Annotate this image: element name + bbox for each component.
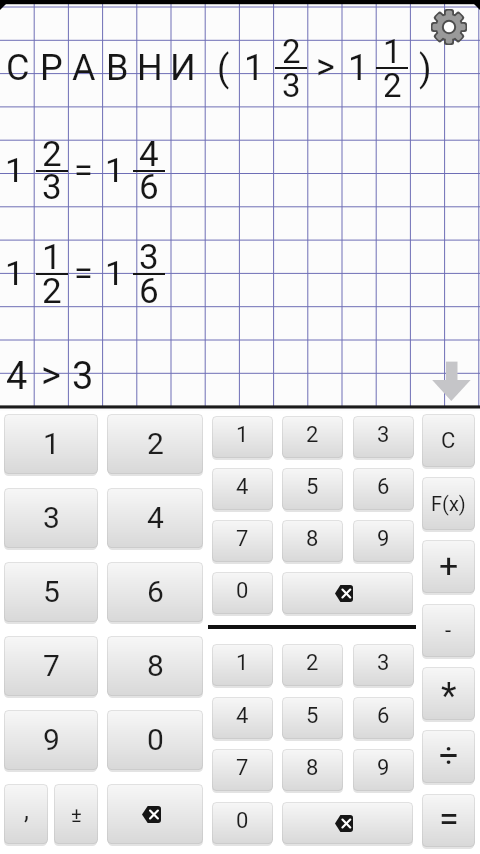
button[interactable]: 1 [212, 416, 273, 458]
button[interactable]: 0 [212, 572, 273, 614]
button[interactable] [282, 572, 413, 614]
button[interactable]: 8 [107, 636, 203, 696]
staticText: * [441, 675, 457, 717]
staticText: 2 [147, 426, 164, 461]
staticText: 9 [377, 755, 390, 781]
staticText: 3 [72, 354, 94, 399]
staticText: - [445, 618, 452, 644]
button[interactable]: 7 [212, 749, 273, 791]
button[interactable]: - [422, 604, 475, 657]
staticText: ÷ [439, 735, 459, 775]
staticText: 2 [306, 650, 319, 676]
button[interactable]: 3 [353, 644, 414, 686]
staticText: 1 [5, 253, 25, 293]
staticText: 2 [42, 271, 62, 312]
staticText: 5 [43, 574, 60, 609]
staticText: А [72, 47, 96, 89]
staticText: 5 [306, 474, 319, 500]
staticText: 9 [43, 722, 60, 757]
staticText: 7 [236, 755, 249, 781]
staticText: 1 [236, 422, 249, 448]
button[interactable]: 8 [282, 749, 343, 791]
staticText: 2 [42, 134, 62, 175]
staticText: 2 [306, 422, 319, 448]
staticText: + [439, 545, 459, 585]
staticText: В [106, 47, 129, 89]
staticText: 3 [43, 500, 60, 535]
button[interactable]: ± [54, 784, 98, 844]
staticText: 0 [147, 722, 164, 757]
button[interactable]: 9 [4, 710, 98, 770]
button[interactable]: 6 [353, 697, 414, 739]
staticText: 6 [377, 474, 390, 500]
button[interactable]: F(x) [422, 477, 475, 530]
button[interactable]: ÷ [422, 730, 475, 783]
button[interactable]: 6 [353, 468, 414, 510]
button[interactable]: 3 [353, 416, 414, 458]
button[interactable]: 5 [282, 468, 343, 510]
button[interactable]: 0 [107, 710, 203, 770]
button[interactable]: C [422, 414, 475, 467]
staticText: 0 [236, 578, 249, 604]
staticText: 1 [42, 237, 62, 278]
staticText: С [6, 47, 30, 89]
button[interactable]: 2 [282, 644, 343, 686]
button[interactable]: + [422, 540, 475, 593]
staticText: 3 [139, 237, 159, 278]
staticText: 4 [236, 474, 249, 500]
staticText: 4 [139, 134, 159, 175]
staticText: 2 [383, 66, 402, 105]
button[interactable]: 6 [107, 562, 203, 622]
staticText: 6 [377, 703, 390, 729]
staticText: 1 [105, 253, 125, 293]
button[interactable]: 5 [282, 697, 343, 739]
staticText: 7 [236, 526, 249, 552]
button[interactable]: 4 [107, 488, 203, 548]
button[interactable]: 1 [4, 414, 98, 474]
button[interactable]: = [422, 794, 475, 847]
staticText: ± [71, 803, 82, 826]
button[interactable]: 9 [353, 520, 414, 562]
button[interactable]: 7 [212, 520, 273, 562]
staticText: 9 [377, 526, 390, 552]
staticText: 3 [42, 167, 62, 208]
staticText: 1 [383, 32, 402, 71]
staticText: 3 [377, 650, 390, 676]
staticText: ) [419, 48, 432, 90]
staticText: 1 [244, 47, 265, 89]
staticText: = [74, 150, 93, 190]
staticText: 2 [282, 32, 301, 71]
staticText: 1 [105, 150, 125, 190]
staticText: 1 [348, 47, 369, 89]
button[interactable]: 2 [282, 416, 343, 458]
button[interactable]: 1 [212, 644, 273, 686]
staticText: 0 [236, 808, 249, 834]
staticText: 8 [306, 755, 319, 781]
button[interactable]: 4 [212, 468, 273, 510]
staticText: И [170, 47, 196, 89]
staticText: 6 [139, 167, 159, 208]
button[interactable]: * [422, 667, 475, 720]
button[interactable]: 2 [107, 414, 203, 474]
staticText: 3 [282, 66, 301, 105]
button[interactable] [282, 802, 413, 844]
staticText: , [24, 796, 29, 825]
button[interactable]: 0 [212, 802, 273, 844]
staticText: 3 [377, 422, 390, 448]
staticText: 6 [139, 271, 159, 312]
staticText: Н [137, 47, 163, 89]
staticText: C [441, 428, 456, 454]
button[interactable]: 3 [4, 488, 98, 548]
staticText: 8 [147, 648, 164, 683]
button[interactable]: 8 [282, 520, 343, 562]
button[interactable]: 7 [4, 636, 98, 696]
staticText: 4 [147, 500, 164, 535]
button[interactable] [107, 784, 203, 844]
staticText: 1 [236, 650, 249, 676]
staticText: ( [217, 48, 230, 90]
button[interactable]: 9 [353, 749, 414, 791]
button[interactable]: 5 [4, 562, 98, 622]
button[interactable]: , [4, 784, 48, 844]
button[interactable]: 4 [212, 697, 273, 739]
staticText: 6 [147, 574, 164, 609]
